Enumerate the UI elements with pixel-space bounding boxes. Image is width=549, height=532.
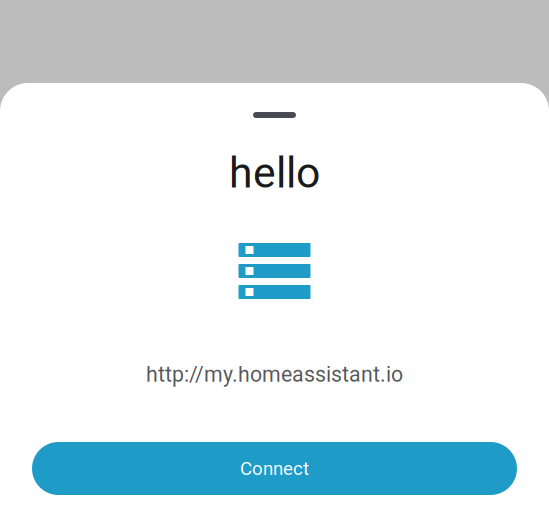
staticText: http://my.homeassistant.io [146, 362, 403, 387]
staticText: hello [229, 148, 320, 198]
staticText: Connect [240, 458, 309, 479]
button[interactable]: Connect [32, 442, 517, 495]
